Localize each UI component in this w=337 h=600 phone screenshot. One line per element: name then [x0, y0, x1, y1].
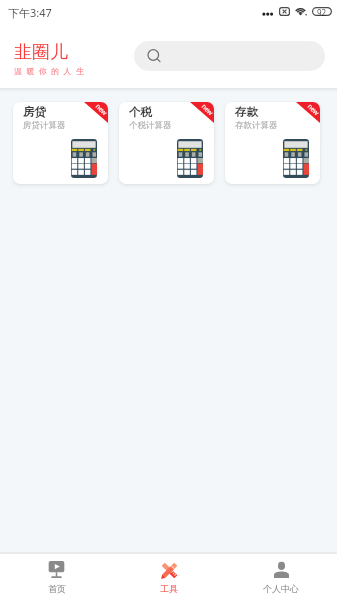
button[interactable]: 个人中心 — [225, 554, 337, 600]
staticText: 存款计算器 — [235, 120, 278, 131]
button[interactable]: 工具 — [113, 554, 225, 600]
button[interactable]: 存款 — [225, 102, 320, 184]
staticText: 存款 — [235, 105, 258, 119]
staticText: 个税计算器 — [129, 120, 172, 131]
staticText: 温暖你的人生 — [14, 66, 89, 76]
staticText: new — [200, 102, 214, 117]
staticText: 92 — [317, 7, 327, 16]
staticText: 工具 — [160, 583, 178, 594]
button[interactable]: Search — [134, 41, 325, 71]
staticText: 首页 — [48, 583, 66, 594]
staticText: 个人中心 — [263, 583, 299, 594]
staticText: 房贷 — [23, 105, 46, 119]
staticText: 下午3:47 — [8, 5, 52, 20]
staticText: new — [94, 102, 108, 117]
button[interactable]: 首页 — [0, 554, 113, 600]
staticText: new — [306, 102, 320, 117]
staticText: 个税 — [129, 105, 152, 119]
button[interactable]: 个税 — [119, 102, 214, 184]
button[interactable]: 房贷 — [13, 102, 108, 184]
staticText: 房贷计算器 — [23, 120, 66, 131]
staticText: 韭圈儿 — [14, 41, 68, 64]
